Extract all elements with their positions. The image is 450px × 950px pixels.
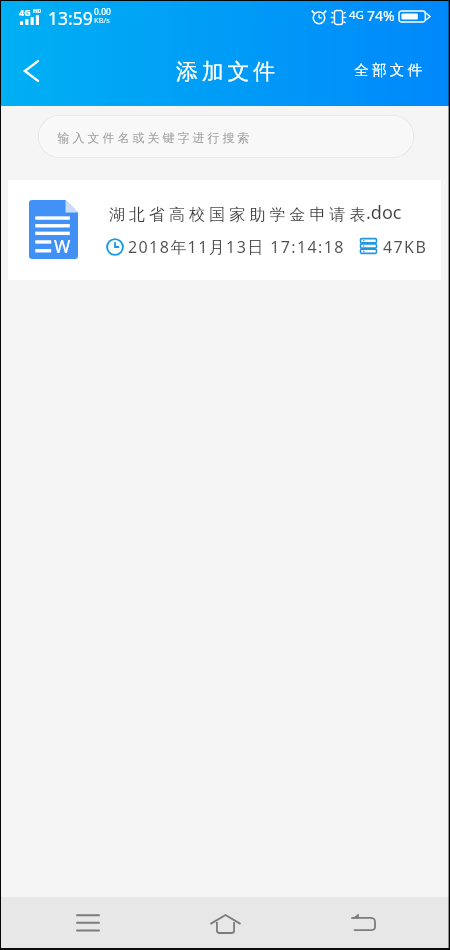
staticText: 输入文件名或关键字进行搜索 [56, 130, 251, 145]
button[interactable]: Back [4, 44, 58, 98]
staticText: 0.00 [94, 6, 111, 18]
button[interactable]: 输入文件名或关键字进行搜索 [38, 115, 414, 158]
staticText: 4G [19, 6, 31, 18]
staticText: 2018年11月13日 17:14:18 [128, 236, 345, 258]
staticText: 47KB [383, 236, 428, 258]
button[interactable]: Recent apps [55, 897, 121, 948]
staticText: W [54, 234, 71, 258]
button[interactable]: W [8, 180, 441, 280]
staticText: 4G [349, 7, 364, 23]
staticText: KB/s [94, 15, 110, 25]
button[interactable]: 全部文件 [340, 50, 440, 90]
staticText: 74% [367, 6, 395, 25]
button[interactable]: Home [192, 897, 258, 948]
staticText: 添加文件 [176, 58, 279, 86]
staticText: 湖北省高校国家助学金申请表 [109, 205, 370, 225]
staticText: .doc [366, 200, 402, 225]
staticText: HD [33, 7, 42, 14]
staticText: 全部文件 [354, 61, 426, 79]
staticText: 13:59 [48, 6, 93, 30]
button[interactable]: Back [330, 897, 396, 948]
